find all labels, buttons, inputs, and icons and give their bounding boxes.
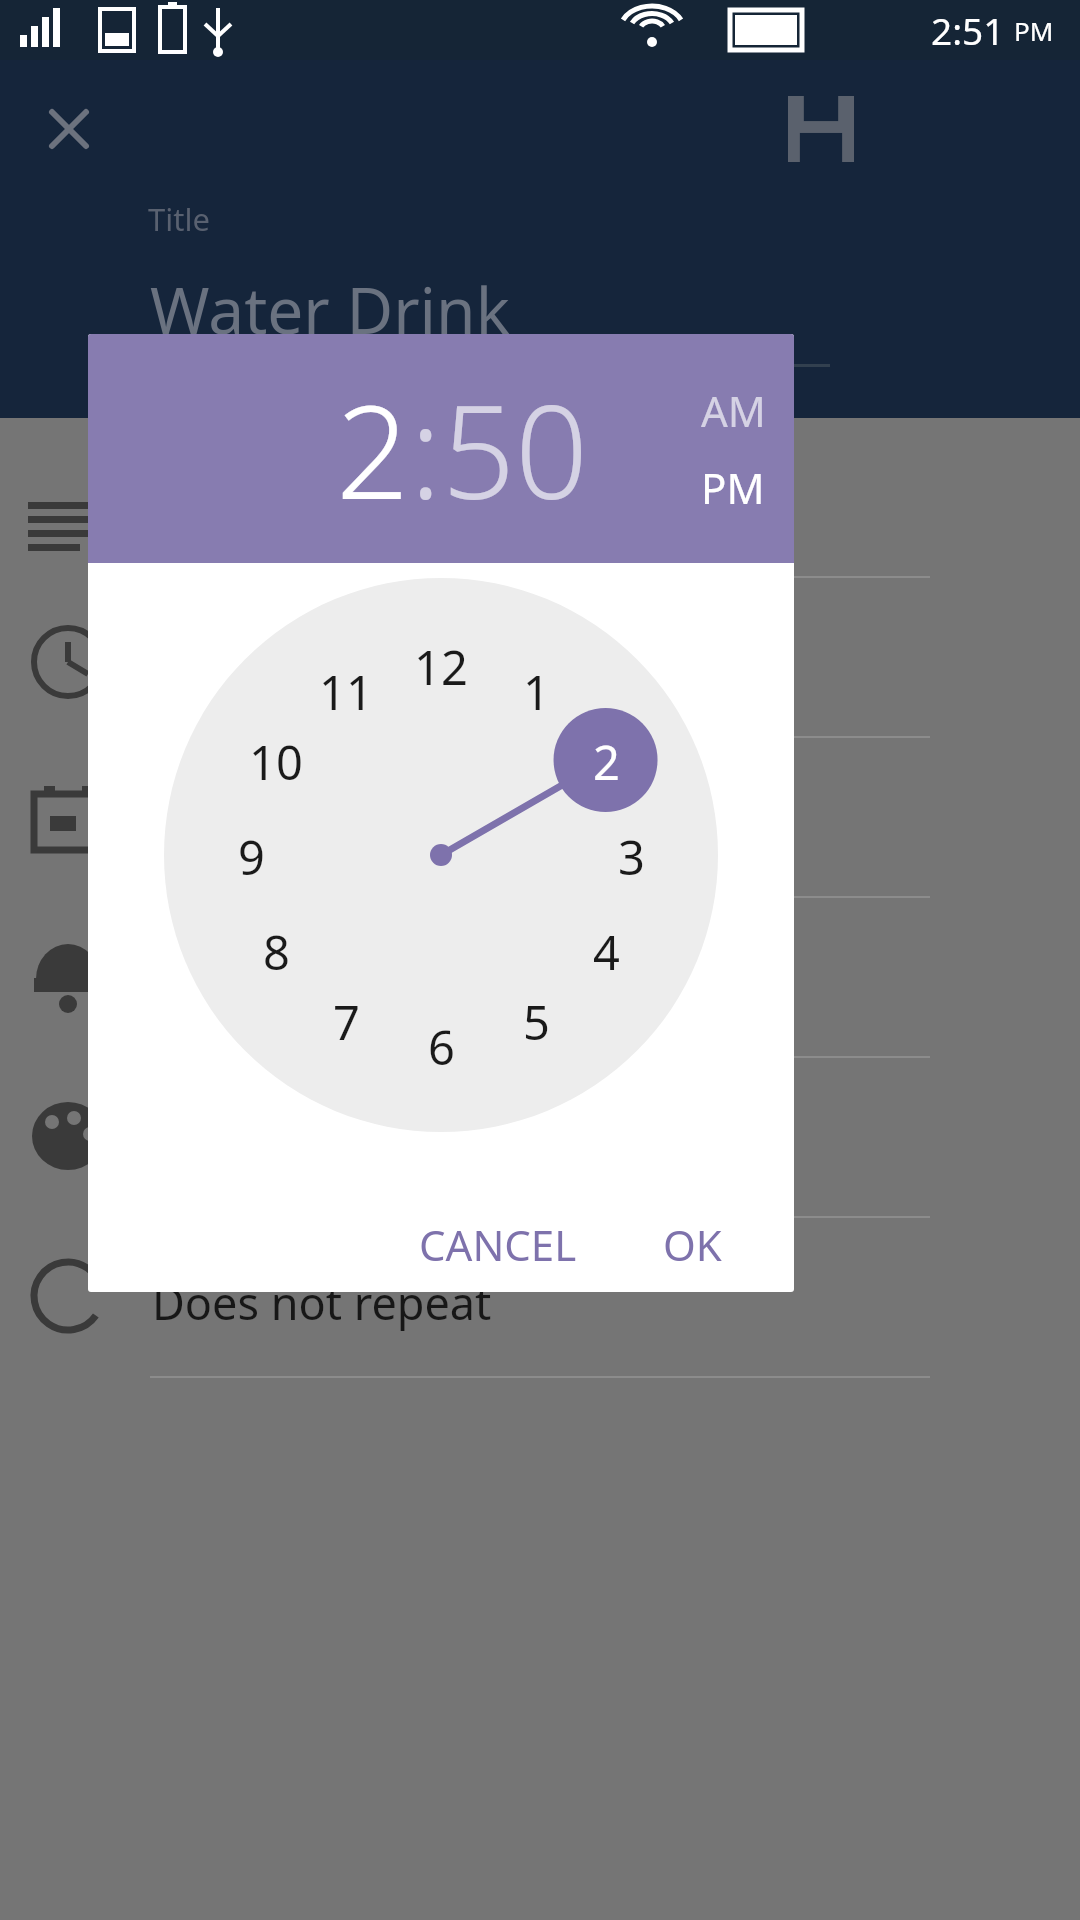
button[interactable]: 12 [88, 563, 794, 1197]
staticText: 11 [319, 660, 373, 720]
button[interactable]: PM [701, 459, 765, 516]
staticText: 8 [263, 920, 290, 980]
staticText: CANCEL [419, 1216, 577, 1273]
staticText: PM [701, 459, 765, 516]
staticText: 2:51 [931, 5, 1005, 55]
button[interactable]: Close [34, 94, 104, 164]
button[interactable]: CANCEL [405, 1206, 591, 1283]
staticText: : [410, 362, 442, 536]
staticText: 1 [523, 660, 550, 720]
staticText: 4 [593, 920, 620, 980]
staticText: 10 [249, 730, 303, 790]
staticText: Does not repeat [152, 1272, 492, 1333]
button[interactable]: 2 [336, 362, 410, 536]
staticText: 2 [593, 730, 620, 790]
staticText: 7 [333, 990, 360, 1050]
button[interactable]: Save [788, 96, 854, 162]
staticText: 5 [523, 990, 550, 1050]
staticText: PM [1014, 13, 1054, 48]
button[interactable]: AM [701, 382, 766, 439]
staticText: OK [663, 1216, 722, 1273]
staticText: 2 [336, 362, 410, 536]
staticText: AM [701, 382, 766, 439]
staticText: 6 [428, 1015, 455, 1075]
staticText: Water Drink [150, 266, 510, 353]
button[interactable]: 50 [442, 362, 589, 536]
staticText: 12 [414, 635, 468, 695]
staticText: 3 [618, 825, 645, 885]
staticText: Title [148, 198, 210, 240]
button[interactable]: OK [649, 1206, 736, 1283]
staticText: 50 [442, 362, 589, 536]
staticText: 9 [238, 825, 265, 885]
